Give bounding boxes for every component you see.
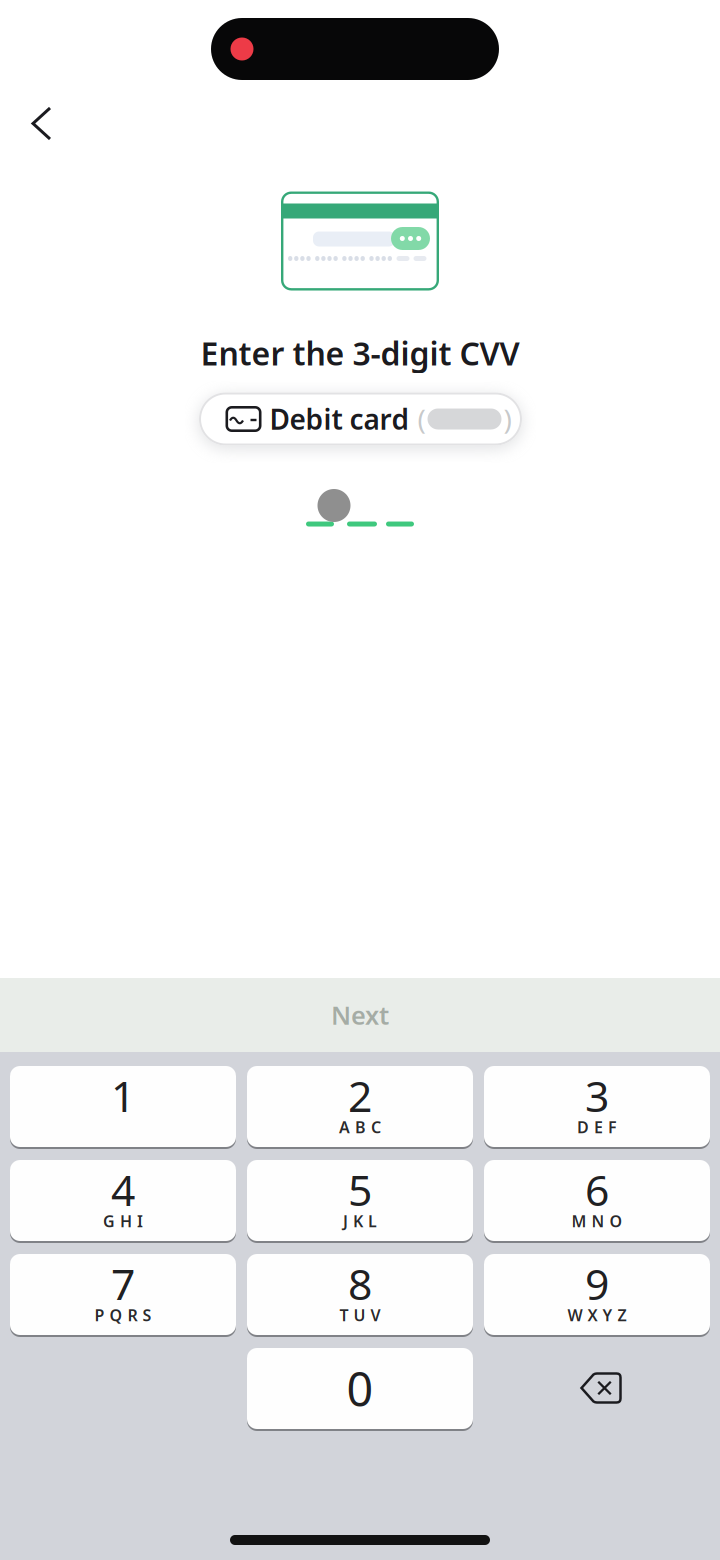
staticText: 1 xyxy=(111,1067,135,1124)
staticText: PQRS xyxy=(94,1304,151,1326)
staticText: Debit card xyxy=(269,400,409,438)
button[interactable]: Debit card xyxy=(199,392,522,445)
staticText: 7 xyxy=(111,1255,135,1312)
button[interactable]: 6 xyxy=(484,1160,710,1241)
staticText: Next xyxy=(331,998,389,1032)
staticText: ( xyxy=(417,400,425,438)
button[interactable]: 4 xyxy=(10,1160,236,1241)
staticText: MNO xyxy=(571,1210,622,1232)
staticText: ) xyxy=(503,400,511,438)
staticText: TUV xyxy=(339,1304,380,1326)
button[interactable]: Next xyxy=(0,978,720,1052)
staticText: JKL xyxy=(343,1210,377,1232)
button[interactable]: 8 xyxy=(247,1254,473,1335)
button[interactable]: 9 xyxy=(484,1254,710,1335)
staticText: 6 xyxy=(585,1161,609,1218)
staticText: WXYZ xyxy=(567,1304,626,1326)
button[interactable]: 3 xyxy=(484,1066,710,1147)
staticText: DEF xyxy=(577,1116,617,1138)
staticText: 4 xyxy=(111,1161,135,1218)
button[interactable]: 2 xyxy=(247,1066,473,1147)
button[interactable] xyxy=(484,1347,710,1428)
button[interactable] xyxy=(22,101,66,145)
staticText: 8 xyxy=(348,1255,372,1312)
button[interactable]: 7 xyxy=(10,1254,236,1335)
staticText: 5 xyxy=(348,1161,372,1218)
staticText: ABC xyxy=(339,1116,381,1138)
staticText: 9 xyxy=(585,1255,609,1312)
button[interactable]: 1 xyxy=(10,1066,236,1147)
staticText: 0 xyxy=(346,1357,373,1419)
staticText: 2 xyxy=(348,1067,372,1124)
staticText: Enter the 3-digit CVV xyxy=(200,332,519,374)
button[interactable]: 5 xyxy=(247,1160,473,1241)
button[interactable]: 0 xyxy=(247,1348,473,1429)
staticText: GHI xyxy=(103,1210,143,1232)
staticText: 3 xyxy=(585,1067,609,1124)
